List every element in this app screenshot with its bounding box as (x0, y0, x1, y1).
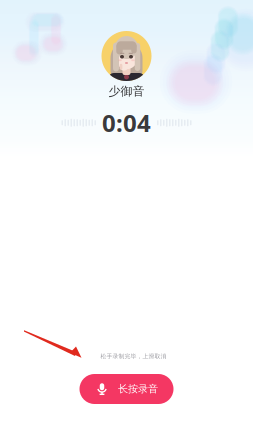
staticText: 少御音 (108, 84, 144, 99)
staticText: 松手录制完毕，上滑取消 (100, 353, 166, 360)
staticText: 0:04 (102, 107, 151, 139)
button[interactable]: 长按录音 (79, 374, 173, 404)
staticText: 长按录音 (118, 383, 158, 395)
